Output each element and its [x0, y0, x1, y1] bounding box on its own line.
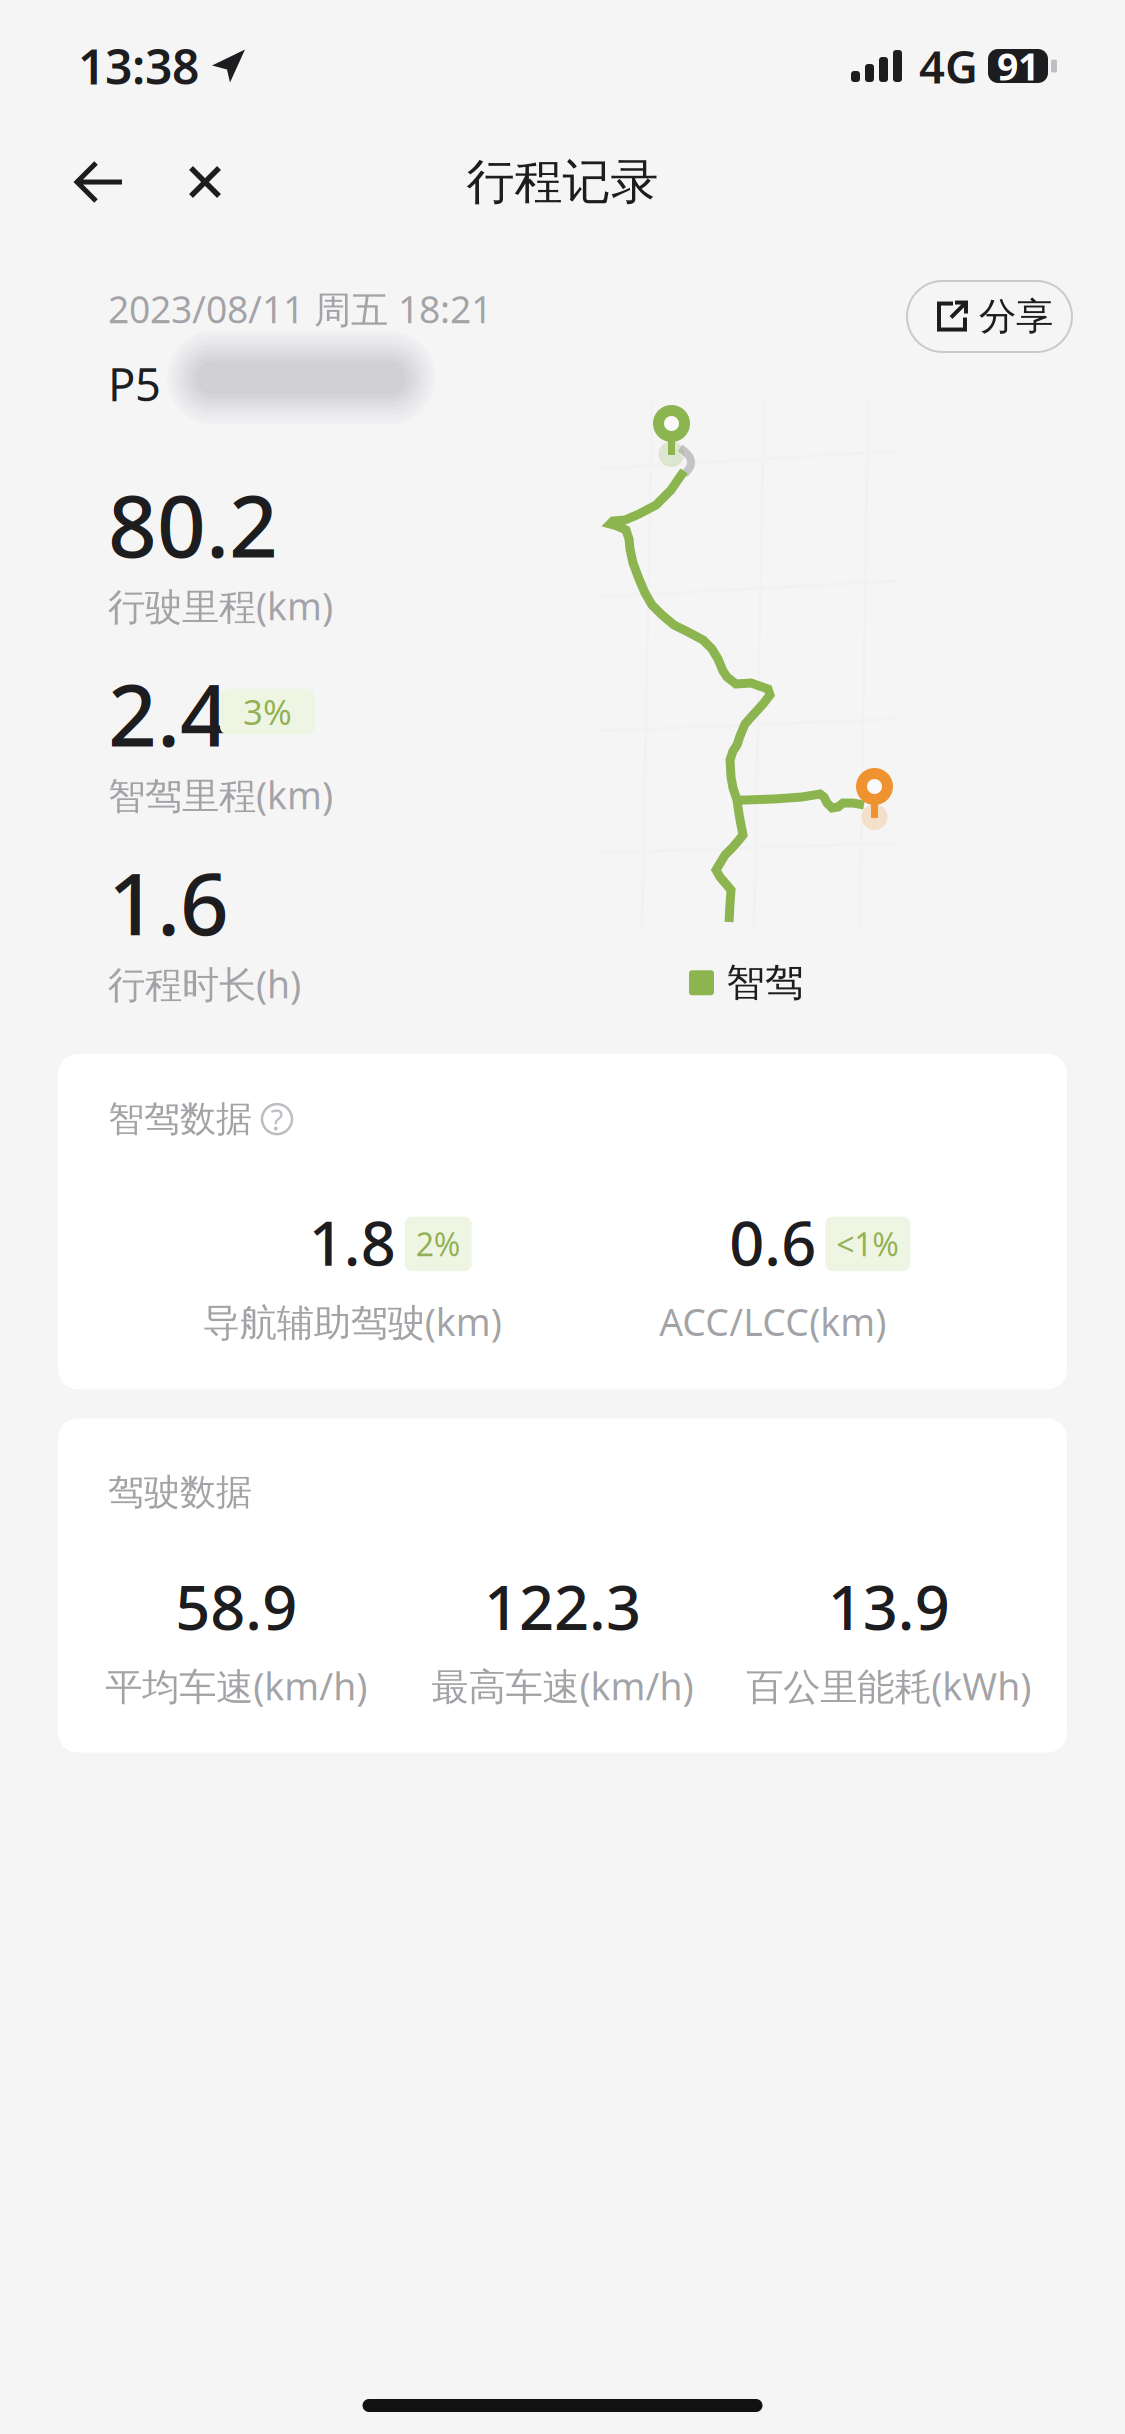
staticText: 百公里能耗(kWh) [746, 1661, 1031, 1710]
staticText: 2% [416, 1223, 461, 1265]
button[interactable]: 分享 [907, 281, 1072, 352]
staticText: 智驾里程(km) [108, 770, 333, 820]
staticText: 3% [243, 689, 292, 735]
button[interactable]: Back [52, 132, 146, 232]
staticText: 122.3 [484, 1565, 641, 1647]
staticText: 行驶里程(km) [108, 581, 333, 631]
staticText: 行程记录 [466, 152, 658, 211]
staticText: ACC/LCC(km) [659, 1297, 886, 1346]
staticText: 智驾 [726, 959, 804, 1006]
staticText: 80.2 [108, 468, 278, 581]
staticText: 驾驶数据 [108, 1470, 252, 1514]
staticText: 智驾数据 [108, 1097, 252, 1141]
staticText: P5 [108, 354, 161, 414]
staticText: 0.6 [729, 1201, 816, 1283]
staticText: 58.9 [175, 1565, 297, 1647]
staticText: 分享 [979, 294, 1053, 339]
staticText: <1% [836, 1223, 899, 1265]
staticText: 2023/08/11 周五 18:21 [108, 284, 492, 334]
staticText: 最高车速(km/h) [431, 1661, 693, 1710]
staticText: 91 [997, 41, 1039, 91]
staticText: 1.8 [309, 1201, 396, 1283]
staticText: 导航辅助驾驶(km) [203, 1297, 502, 1346]
staticText: ? [270, 1100, 283, 1139]
staticText: 1.6 [108, 846, 229, 959]
staticText: 4G [919, 36, 978, 96]
staticText: 13:38 [78, 34, 199, 98]
staticText: 13.9 [828, 1565, 950, 1647]
staticText: 行程时长(h) [108, 959, 301, 1008]
button[interactable]: Close [146, 132, 248, 232]
staticText: 平均车速(km/h) [105, 1661, 367, 1710]
staticText: 2.4 [108, 657, 229, 770]
